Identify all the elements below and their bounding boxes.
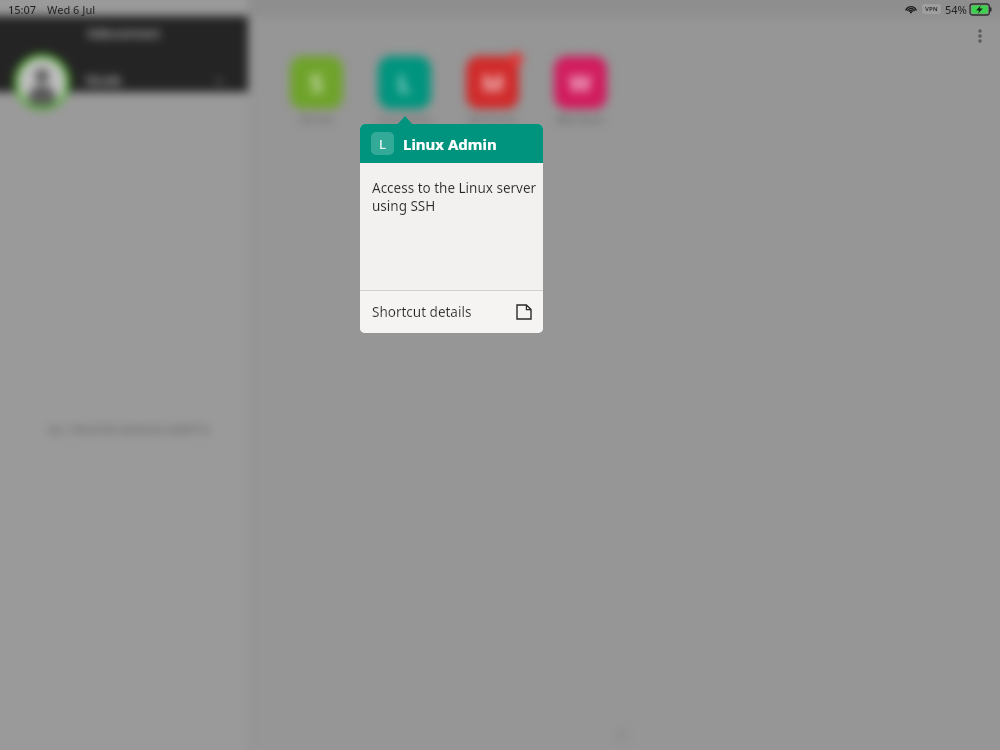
staticText: Mail Server bbox=[469, 113, 517, 125]
staticText: Git Hub bbox=[300, 113, 333, 125]
button[interactable]: L bbox=[371, 124, 543, 163]
staticText: Shortcut details bbox=[372, 303, 472, 321]
staticText: kdeconnect bbox=[88, 24, 161, 42]
button[interactable]: M bbox=[466, 56, 519, 109]
staticText: 15:07 bbox=[8, 2, 37, 17]
staticText: Linux Admin bbox=[378, 113, 431, 125]
staticText: W bbox=[569, 66, 592, 99]
button[interactable]: More options bbox=[962, 18, 998, 54]
staticText: Nicole bbox=[86, 72, 122, 88]
staticText: Wed 6 Jul bbox=[47, 2, 96, 17]
staticText: L bbox=[379, 135, 386, 153]
button[interactable]: L bbox=[378, 56, 431, 109]
staticText: 54% bbox=[945, 2, 967, 17]
staticText: Web Server bbox=[556, 113, 605, 125]
button[interactable]: W bbox=[554, 56, 607, 109]
staticText: L bbox=[398, 66, 411, 99]
staticText: S bbox=[310, 66, 324, 99]
staticText: v bbox=[216, 72, 223, 88]
staticText: Linux Admin bbox=[403, 134, 497, 154]
button[interactable]: S bbox=[290, 56, 343, 109]
staticText: Access to the Linux server using SSH bbox=[372, 179, 537, 215]
staticText: M bbox=[482, 66, 504, 99]
staticText: VPN bbox=[925, 5, 938, 13]
button[interactable]: Shortcut details bbox=[360, 291, 543, 333]
